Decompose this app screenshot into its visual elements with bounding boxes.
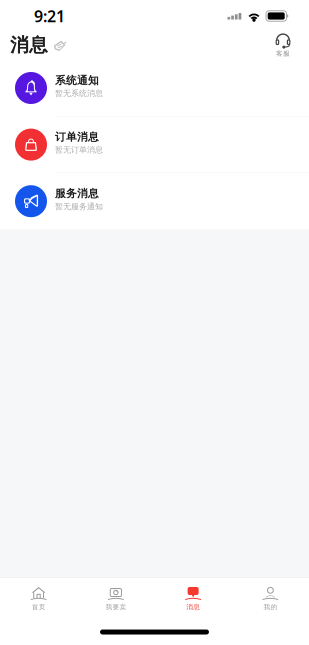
staticText: 暂无服务通知 [55,202,103,211]
staticText: 服务消息 [55,187,99,200]
button[interactable]: 我要卖 [77,578,154,619]
staticText: 暂无订单消息 [55,145,103,155]
staticText: 我要卖 [105,603,126,611]
button[interactable]: 订单消息 [0,117,309,173]
button[interactable]: 首页 [0,578,77,619]
staticText: 订单消息 [55,130,99,143]
staticText: 9:21 [34,5,65,27]
staticText: 消息 [10,33,48,56]
staticText: 暂无系统消息 [55,88,103,98]
button[interactable]: 服务消息 [0,173,309,229]
staticText: 我的 [263,603,277,611]
button[interactable]: 消息 [154,578,232,619]
staticText: 消息 [186,603,200,611]
button[interactable]: 客服 [275,32,291,58]
staticText: 客服 [276,49,290,58]
staticText: 系统通知 [55,74,99,87]
button[interactable]: 我的 [232,578,309,619]
button[interactable]: 系统通知 [0,60,309,116]
staticText: 首页 [32,603,46,611]
